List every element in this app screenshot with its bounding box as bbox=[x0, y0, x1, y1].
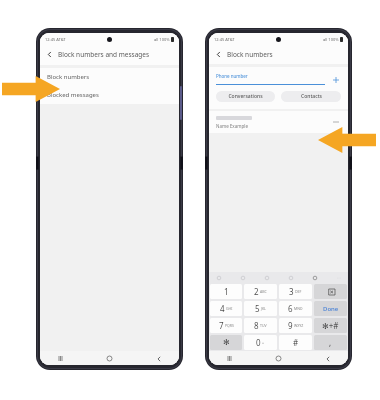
button[interactable]: ✻ bbox=[210, 335, 242, 350]
staticText: Phone number bbox=[216, 73, 248, 79]
button[interactable]: Done bbox=[314, 301, 347, 316]
staticText: 1 bbox=[224, 286, 229, 297]
staticText: GHI bbox=[226, 306, 233, 311]
staticText: 0 bbox=[256, 337, 261, 348]
staticText: Name Example bbox=[216, 123, 248, 129]
button[interactable]: Remove bbox=[331, 117, 341, 127]
staticText: PQRS bbox=[225, 323, 234, 328]
staticText: Contacts bbox=[301, 93, 322, 100]
button[interactable]: 9 bbox=[279, 318, 312, 333]
button[interactable]: Blocked messages bbox=[40, 86, 179, 104]
staticText: JKL bbox=[261, 306, 266, 311]
button[interactable]: Backspace bbox=[314, 284, 347, 299]
button[interactable]: Keyboard option 5 bbox=[311, 274, 318, 281]
staticText: Conversations bbox=[228, 93, 263, 100]
staticText: 4 bbox=[220, 303, 225, 314]
button[interactable]: Keyboard option 2 bbox=[239, 274, 246, 281]
button[interactable]: 4 bbox=[210, 301, 242, 316]
staticText: 5 bbox=[255, 303, 260, 314]
staticText: ✻ bbox=[223, 338, 230, 347]
staticText: 12:45 AT&T bbox=[214, 37, 235, 42]
button[interactable]: 5 bbox=[244, 301, 277, 316]
staticText: 3 bbox=[289, 286, 294, 297]
button[interactable]: Keyboard option 4 bbox=[287, 274, 294, 281]
button[interactable]: Recents bbox=[56, 354, 65, 363]
button[interactable]: Back bbox=[323, 354, 332, 363]
staticText: ✻+# bbox=[322, 320, 339, 331]
staticText: Block numbers bbox=[227, 50, 273, 59]
button[interactable]: Recents bbox=[225, 354, 234, 363]
staticText: 8 bbox=[254, 320, 259, 331]
button[interactable]: 0 bbox=[244, 335, 277, 350]
button[interactable]: 6 bbox=[279, 301, 312, 316]
staticText: 2 bbox=[254, 286, 259, 297]
staticText: 6 bbox=[288, 303, 293, 314]
button[interactable]: Back bbox=[40, 46, 179, 62]
button[interactable]: Add number bbox=[331, 75, 341, 85]
button[interactable]: ✻+# bbox=[314, 318, 347, 333]
staticText: 9 bbox=[288, 320, 293, 331]
button[interactable]: Back bbox=[214, 50, 223, 59]
staticText: all 100% bbox=[154, 37, 170, 42]
staticText: WXYZ bbox=[294, 323, 304, 328]
button[interactable]: Contacts bbox=[281, 91, 341, 102]
staticText: TUV bbox=[260, 323, 267, 328]
button[interactable]: Keyboard option 3 bbox=[263, 274, 270, 281]
staticText: MNO bbox=[294, 306, 303, 311]
button[interactable]: Keyboard option 1 bbox=[215, 274, 222, 281]
button[interactable]: Back bbox=[209, 46, 348, 62]
button[interactable]: 1 bbox=[210, 284, 242, 299]
button[interactable]: Block numbers bbox=[40, 68, 179, 86]
button[interactable]: Back bbox=[154, 354, 163, 363]
button[interactable]: Home bbox=[105, 354, 114, 363]
staticText: 12:45 AT&T bbox=[45, 37, 66, 42]
staticText: # bbox=[293, 337, 299, 348]
button[interactable]: 3 bbox=[279, 284, 312, 299]
button[interactable]: 2 bbox=[244, 284, 277, 299]
staticText: Block numbers bbox=[47, 73, 90, 81]
staticText: , bbox=[329, 337, 332, 348]
button[interactable]: , bbox=[314, 335, 347, 350]
staticText: 7 bbox=[219, 320, 224, 331]
staticText: all 100% bbox=[323, 37, 339, 42]
button[interactable]: # bbox=[279, 335, 312, 350]
staticText: Block numbers and messages bbox=[58, 50, 150, 59]
staticText: Done bbox=[323, 305, 339, 313]
staticText: Blocked messages bbox=[47, 91, 99, 99]
button[interactable]: Conversations bbox=[216, 91, 275, 102]
button[interactable]: Name Example bbox=[209, 111, 348, 133]
button[interactable]: Home bbox=[274, 354, 283, 363]
button[interactable]: 8 bbox=[244, 318, 277, 333]
staticText: DEF bbox=[295, 289, 302, 294]
button[interactable]: Back bbox=[45, 50, 54, 59]
staticText: + bbox=[262, 340, 265, 345]
staticText: ABC bbox=[260, 289, 267, 294]
button[interactable]: 7 bbox=[210, 318, 242, 333]
